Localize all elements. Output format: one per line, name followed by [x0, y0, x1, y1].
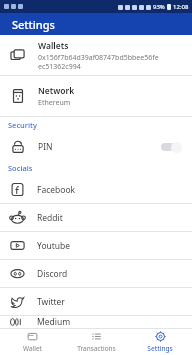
button[interactable]: Transactions: [64, 329, 128, 355]
staticText: PIN: [38, 141, 160, 153]
staticText: 93%: [153, 3, 165, 11]
staticText: Discord: [37, 268, 68, 280]
button[interactable]: Facebook: [0, 176, 192, 203]
staticText: 0x156f7b64d39af08747bd5bbee56fe ec51362c…: [38, 53, 159, 71]
staticText: Socials: [8, 163, 33, 173]
button[interactable]: Network: [0, 76, 192, 116]
staticText: Wallets: [38, 40, 69, 52]
button[interactable]: Medium: [0, 316, 192, 328]
staticText: Transactions: [77, 344, 116, 353]
button[interactable]: Discord: [0, 260, 192, 287]
staticText: Wallet: [23, 344, 42, 353]
staticText: Facebook: [37, 184, 76, 196]
button[interactable]: Youtube: [0, 232, 192, 259]
button[interactable]: Twitter: [0, 288, 192, 315]
button[interactable]: Settings: [128, 329, 192, 355]
staticText: Reddit: [37, 212, 63, 224]
button[interactable]: Reddit: [0, 204, 192, 231]
staticText: Settings: [147, 344, 173, 353]
button[interactable]: Wallets: [0, 35, 192, 75]
staticText: Network: [38, 85, 75, 97]
staticText: Security: [8, 120, 37, 130]
button[interactable]: PIN: [0, 133, 192, 160]
staticText: Twitter: [37, 296, 65, 308]
staticText: Medium: [37, 316, 71, 328]
staticText: 12:08: [173, 3, 189, 11]
button[interactable]: Toggle PIN: [160, 141, 182, 153]
staticText: Ethereum: [38, 98, 71, 108]
staticText: Youtube: [37, 240, 71, 252]
staticText: Settings: [12, 17, 55, 32]
button[interactable]: Wallet: [0, 329, 64, 355]
